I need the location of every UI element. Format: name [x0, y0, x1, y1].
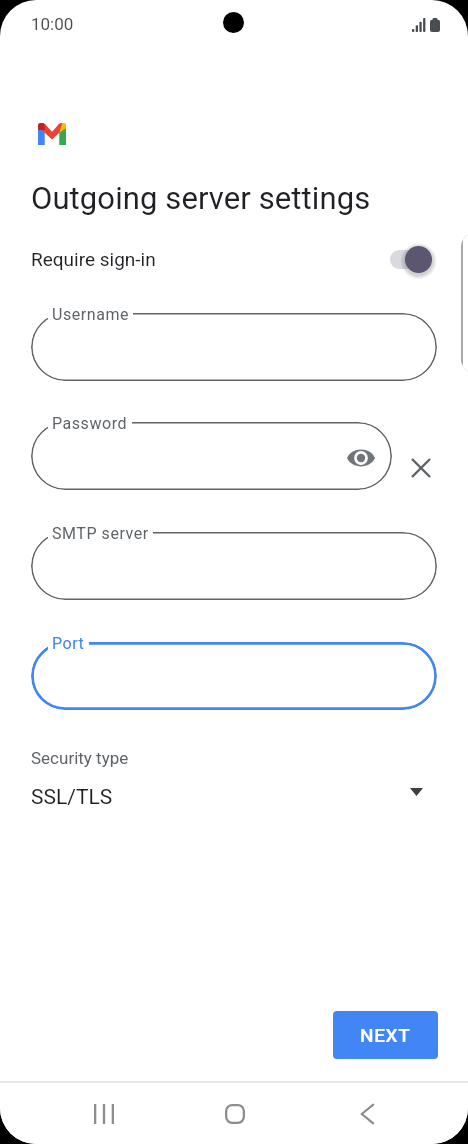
staticText: Require sign-in	[31, 248, 156, 270]
button[interactable]: Recent apps	[76, 1083, 132, 1144]
button[interactable]: Require sign-in	[0, 238, 468, 280]
button[interactable]: NEXT	[333, 1011, 438, 1059]
button[interactable]: Show password	[341, 438, 381, 478]
button[interactable]	[31, 422, 392, 490]
staticText: SSL/TLS	[31, 785, 113, 810]
staticText: Username	[52, 305, 129, 324]
button[interactable]: Home	[207, 1083, 263, 1144]
staticText: Security type	[31, 748, 129, 768]
button[interactable]	[31, 642, 437, 710]
button[interactable]: Clear password	[410, 457, 432, 479]
staticText: Password	[52, 414, 128, 433]
button[interactable]	[31, 313, 437, 381]
button[interactable]: Back	[338, 1083, 394, 1144]
staticText: Port	[52, 634, 85, 653]
staticText: 10:00	[31, 14, 74, 34]
button[interactable]	[31, 532, 437, 600]
button[interactable]: Security type	[0, 748, 468, 818]
staticText: NEXT	[360, 1024, 411, 1046]
staticText: SMTP server	[52, 524, 149, 543]
staticText: Outgoing server settings	[31, 180, 371, 216]
